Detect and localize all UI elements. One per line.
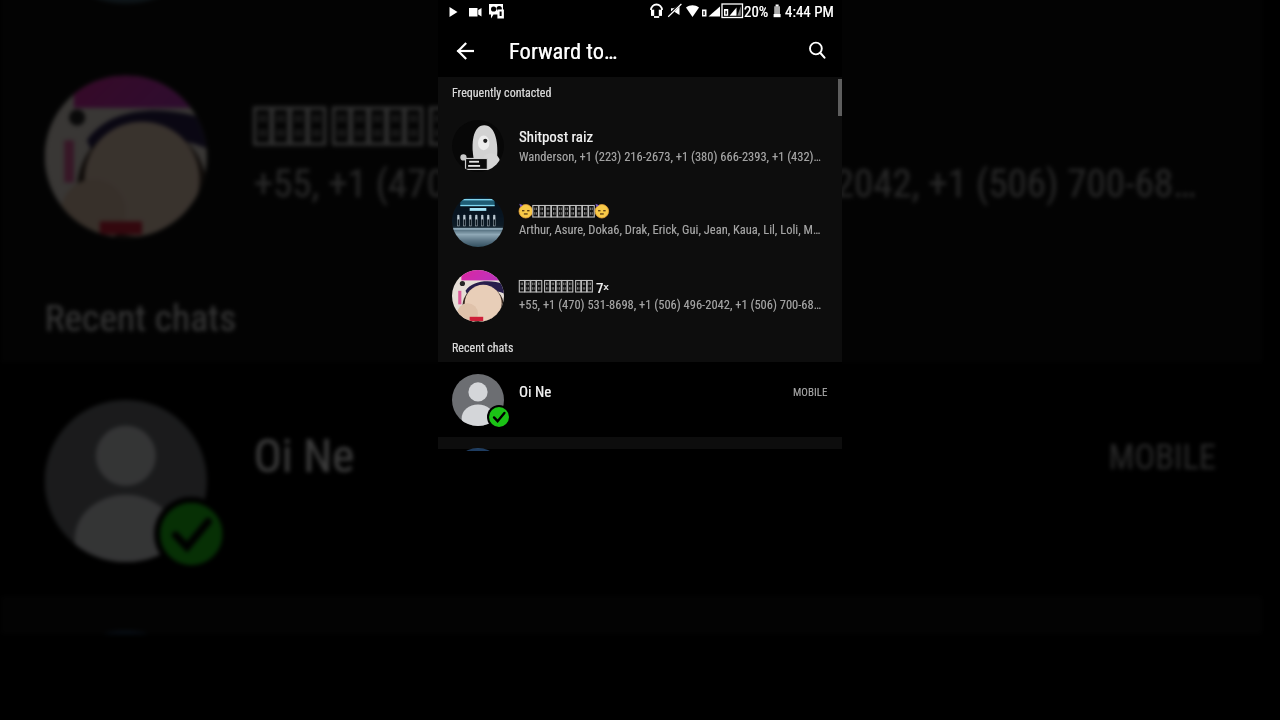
button[interactable]: Oi Ne [1,362,1261,596]
button[interactable]: Arthur, Asure, Doka6, Drak, Erick, Gui, … [438,183,842,258]
button[interactable]: Back [438,25,490,77]
staticText: +55, +1 (470) 531-8698, +1 (506) 496-204… [254,160,1211,206]
staticText: Oi Ne [254,428,357,484]
button[interactable]: Shitpost raiz [438,108,842,183]
staticText: 4:44 PM [785,3,834,21]
staticText: MOBILE [793,386,828,399]
staticText: 7ˣ [494,100,535,147]
staticText: Forward to… [509,38,618,64]
staticText: Recent chats [45,297,238,341]
button[interactable]: Oi Ne [438,362,842,437]
staticText: +55, +1 (470) 531-8698, +1 (506) 496-204… [519,297,826,312]
staticText: Frequently contacted [452,86,552,100]
button[interactable]: 7ˣ [438,258,842,333]
staticText: Arthur, Asure, Doka6, Drak, Erick, Gui, … [519,222,826,237]
staticText: Shitpost raiz [519,128,594,146]
button[interactable]: 7ˣ [1,38,1261,272]
button[interactable]: Search [788,25,840,77]
staticText: MOBILE [1109,437,1218,478]
staticText: Oi Ne [519,383,552,401]
button[interactable]: Arthur, Asure, Doka6, Drak, Erick, Gui, … [1,0,1261,38]
staticText: Recent chats [452,341,514,355]
staticText: 7ˣ [596,278,609,293]
staticText: 20% [744,3,769,21]
staticText: Wanderson, +1 (223) 216-2673, +1 (380) 6… [519,149,821,164]
